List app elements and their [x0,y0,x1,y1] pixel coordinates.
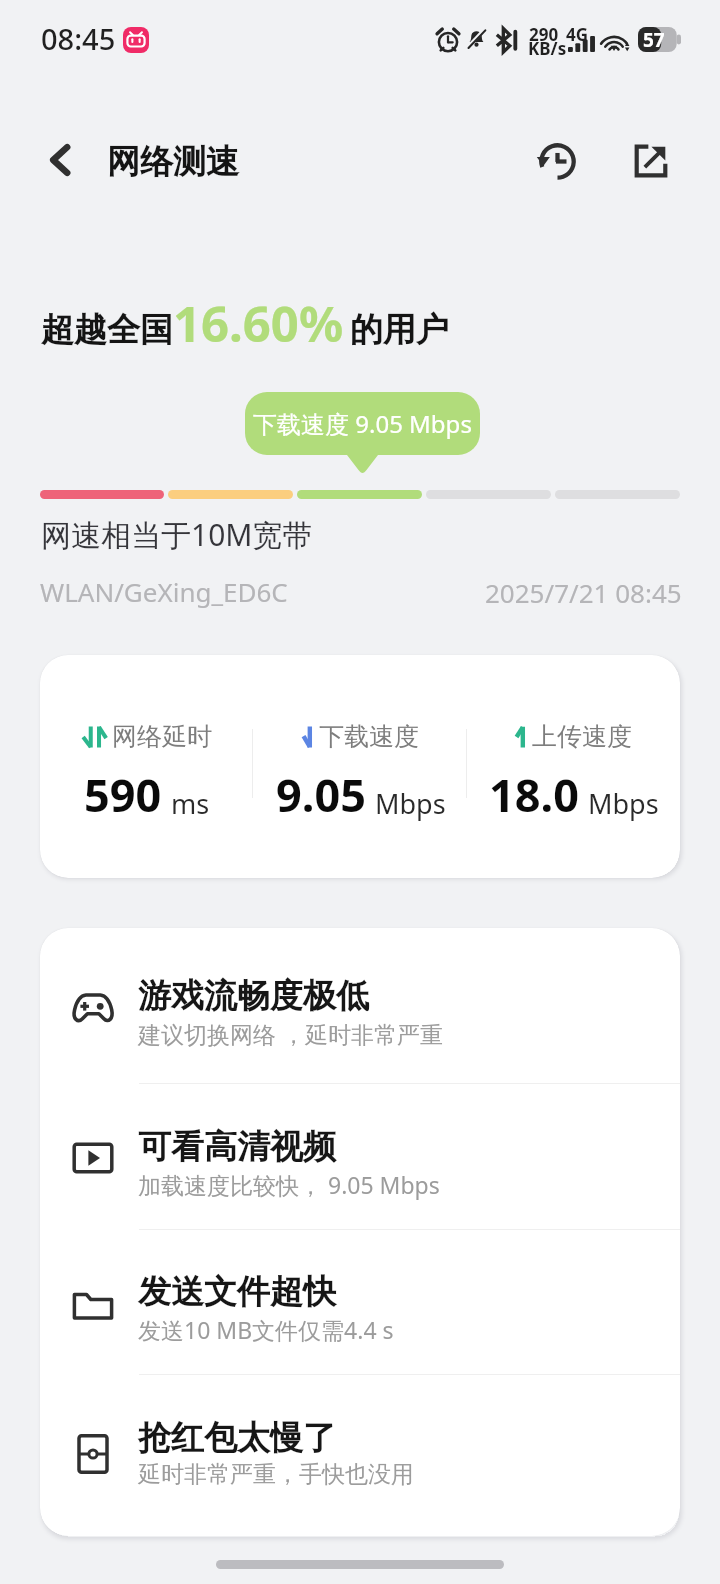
staticText: 发送10 MB文件仅需4.4 s [138,1314,394,1345]
staticText: ms [171,785,210,822]
button[interactable]: Share [612,122,690,200]
staticText: 建议切换网络 ，延时非常严重 [138,1018,443,1049]
staticText: 08:45 [41,19,116,58]
button[interactable]: Back [24,124,96,196]
staticText: 可看高清视频 [138,1126,336,1168]
staticText: 网速相当于10M宽带 [41,514,313,555]
staticText: Mbps [588,785,659,822]
staticText: WLAN/GeXing_ED6C [40,574,288,609]
staticText: 游戏流畅度极低 [138,975,369,1017]
staticText: 57 [643,27,665,52]
staticText: 590 [84,764,162,825]
staticText: 9.05 [276,764,366,825]
staticText: 下载速度 9.05 Mbps [253,407,472,440]
button[interactable]: 发送文件超快 [40,1229,680,1374]
staticText: 上传速度 [532,721,632,752]
staticText: 抢红包太慢了 [138,1417,336,1459]
staticText: 2025/7/21 08:45 [485,575,682,610]
staticText: 延时非常严重，手快也没用 [138,1460,414,1489]
button[interactable]: 可看高清视频 [40,1083,680,1229]
staticText: 网络测速 [107,141,239,183]
staticText: 4G [566,23,589,46]
staticText: 超越全国 [41,309,173,351]
staticText: 16.60% [173,290,344,357]
button[interactable]: History [518,122,596,200]
staticText: 网络延时 [112,721,212,752]
button[interactable]: 游戏流畅度极低 [40,928,680,1083]
button[interactable]: 抢红包太慢了 [40,1374,680,1536]
staticText: 下载速度 [319,721,419,752]
staticText: 发送文件超快 [138,1271,336,1313]
staticText: 加载速度比较快， 9.05 Mbps [138,1169,440,1200]
staticText: 的用户 [350,309,449,351]
staticText: 18.0 [489,764,579,825]
staticText: Mbps [375,785,446,822]
staticText: KB/s [528,37,567,60]
staticText: 290 [529,23,559,46]
